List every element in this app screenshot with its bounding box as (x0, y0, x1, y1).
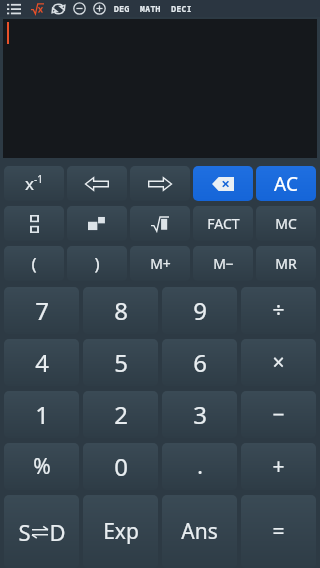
button[interactable]: M+ (130, 246, 190, 281)
other: Functions (31, 3, 44, 15)
staticText: D (49, 517, 66, 547)
button[interactable]: x (4, 166, 64, 201)
staticText: 6 (193, 346, 207, 379)
button[interactable]: Zoom in (92, 2, 107, 15)
staticText: ( (31, 252, 37, 275)
button[interactable] (3, 19, 317, 158)
staticText: 3 (193, 398, 207, 431)
staticText: 5 (114, 346, 128, 379)
staticText: 2 (114, 398, 128, 431)
button[interactable]: 9 (162, 287, 237, 334)
staticText: × (272, 348, 285, 377)
button[interactable]: 7 (4, 287, 79, 334)
staticText: 9 (193, 294, 207, 327)
staticText: ÷ (272, 296, 285, 325)
button[interactable]: M− (193, 246, 253, 281)
button[interactable]: 6 (162, 339, 237, 386)
button[interactable]: Square root (130, 206, 190, 241)
button[interactable]: 5 (83, 339, 158, 386)
button[interactable]: Power (67, 206, 127, 241)
button[interactable]: Swap (51, 3, 66, 15)
other: Zoom out (73, 2, 86, 15)
button[interactable]: Zoom out (72, 2, 87, 15)
button[interactable]: − (241, 391, 316, 438)
staticText: FACT (207, 214, 240, 233)
other: Zoom in (93, 2, 106, 15)
button[interactable]: Functions (30, 3, 45, 15)
button[interactable]: ÷ (241, 287, 316, 334)
staticText: ) (94, 252, 100, 275)
button[interactable]: 8 (83, 287, 158, 334)
button[interactable]: ( (4, 246, 64, 281)
button[interactable]: ) (67, 246, 127, 281)
staticText: % (33, 452, 51, 481)
button[interactable]: 0 (83, 443, 158, 490)
staticText: 8 (114, 294, 128, 327)
staticText: S (18, 517, 31, 547)
staticText: 4 (35, 346, 49, 379)
button[interactable]: MC (256, 206, 316, 241)
button[interactable]: FACT (193, 206, 253, 241)
button[interactable]: Backspace (193, 166, 253, 201)
button[interactable]: 2 (83, 391, 158, 438)
staticText: M+ (150, 254, 171, 273)
button[interactable]: AC (256, 166, 316, 201)
staticText: 7 (35, 294, 49, 327)
button[interactable]: Move right (130, 166, 190, 201)
staticText: M− (213, 254, 234, 273)
staticText: AC (274, 171, 298, 197)
staticText: MC (275, 214, 297, 233)
other: Swap (52, 3, 65, 15)
button[interactable]: . (162, 443, 237, 490)
button[interactable]: × (241, 339, 316, 386)
button[interactable]: 1 (4, 391, 79, 438)
other: Menu (7, 3, 21, 15)
button[interactable]: Menu (5, 3, 23, 15)
button[interactable]: 4 (4, 339, 79, 386)
staticText: − (272, 400, 285, 429)
button[interactable]: Standard decimal toggle (4, 495, 79, 568)
staticText: -1 (34, 172, 43, 186)
button[interactable]: + (241, 443, 316, 490)
button[interactable]: 3 (162, 391, 237, 438)
button[interactable]: Fraction (4, 206, 64, 241)
staticText: x (25, 172, 34, 195)
staticText: Ans (181, 517, 218, 546)
button[interactable]: Ans (162, 495, 237, 568)
staticText: 0 (114, 450, 128, 483)
button[interactable]: MR (256, 246, 316, 281)
button[interactable]: % (4, 443, 79, 490)
button[interactable]: Exp (83, 495, 158, 568)
staticText: = (272, 517, 285, 546)
staticText: 1 (35, 398, 49, 431)
button[interactable]: = (241, 495, 316, 568)
button[interactable]: Move left (67, 166, 127, 201)
staticText: Exp (103, 517, 139, 546)
staticText: . (197, 452, 203, 481)
staticText: + (272, 452, 285, 481)
staticText: DEG MATH DECI (114, 3, 192, 14)
staticText: MR (275, 254, 297, 273)
